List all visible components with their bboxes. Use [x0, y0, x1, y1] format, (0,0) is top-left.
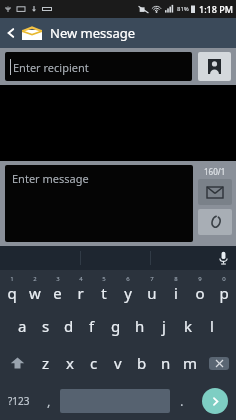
staticText: 0 [222, 275, 226, 283]
button[interactable]: 7 [140, 270, 164, 307]
staticText: y [124, 283, 132, 303]
staticText: u [147, 283, 157, 303]
staticText: e [53, 283, 62, 303]
button[interactable]: s [34, 307, 57, 344]
staticText: 9 [198, 275, 202, 283]
staticText: h [135, 316, 145, 336]
staticText: 160/1 [204, 166, 226, 177]
button[interactable]: 8 [164, 270, 188, 307]
button[interactable]: 1 [0, 270, 23, 307]
staticText: New message [50, 24, 136, 42]
button[interactable]: Shift [0, 344, 34, 382]
staticText: k [184, 316, 193, 336]
staticText: 4 [79, 275, 83, 283]
staticText: 8 [174, 275, 178, 283]
staticText: f [89, 316, 95, 336]
staticText: c [90, 353, 98, 373]
button[interactable]: Delete [202, 344, 236, 382]
staticText: n [161, 353, 171, 373]
button[interactable]: k [176, 307, 200, 344]
button[interactable]: 4 [69, 270, 92, 307]
button[interactable]: f [80, 307, 104, 344]
button[interactable]: m [178, 344, 202, 382]
button[interactable]: ?123 [0, 382, 37, 420]
staticText: a [18, 316, 27, 336]
button[interactable]: h [128, 307, 152, 344]
button[interactable]: 2 [23, 270, 46, 307]
button[interactable]: v [106, 344, 130, 382]
staticText: i [174, 283, 178, 303]
staticText: q [7, 283, 17, 303]
staticText: 5 [102, 275, 106, 283]
staticText: j [162, 316, 166, 336]
button[interactable]: Enter message [5, 165, 193, 242]
staticText: 7 [150, 275, 154, 283]
staticText: d [64, 316, 74, 336]
button[interactable]: a [11, 307, 34, 344]
button[interactable]: 0 [212, 270, 236, 307]
staticText: b [137, 353, 147, 373]
button[interactable]: Convert to multimedia message [198, 179, 232, 205]
button[interactable]: Comma [37, 382, 60, 420]
staticText: x [66, 353, 74, 373]
button[interactable]: Voice input [210, 246, 236, 270]
staticText: m [183, 353, 198, 373]
staticText: 1:18 PM [199, 3, 233, 15]
staticText: w [29, 283, 41, 303]
staticText: Enter recipient [13, 60, 89, 75]
button[interactable]: j [152, 307, 176, 344]
staticText: Enter message [12, 171, 89, 186]
button[interactable]: Send [193, 382, 236, 420]
button[interactable]: 6 [116, 270, 140, 307]
button[interactable]: d [57, 307, 80, 344]
button[interactable]: n [154, 344, 178, 382]
staticText: g [111, 316, 121, 336]
button[interactable]: 9 [188, 270, 212, 307]
staticText: v [114, 353, 122, 373]
staticText: p [219, 283, 229, 303]
staticText: 81% [177, 5, 189, 13]
button[interactable]: Attach [198, 209, 232, 235]
staticText: z [42, 353, 50, 373]
staticText: 2 [33, 275, 37, 283]
button[interactable]: 3 [46, 270, 69, 307]
staticText: 6 [126, 275, 130, 283]
button[interactable]: Add recipient from contacts [198, 52, 231, 81]
staticText: . [180, 392, 184, 410]
staticText: ?123 [8, 394, 30, 408]
staticText: t [101, 283, 107, 303]
button[interactable]: g [104, 307, 128, 344]
staticText: 3 [56, 275, 60, 283]
staticText: l [210, 316, 214, 336]
button[interactable]: 5 [92, 270, 116, 307]
button[interactable]: l [200, 307, 224, 344]
button[interactable]: z [34, 344, 58, 382]
staticText: r [77, 283, 84, 303]
staticText: , [47, 392, 51, 410]
staticText: s [42, 316, 50, 336]
button[interactable]: Back [0, 18, 22, 48]
button[interactable]: Period [170, 382, 193, 420]
button[interactable]: Enter recipient [5, 52, 192, 81]
button[interactable]: x [58, 344, 82, 382]
staticText: 1 [10, 275, 14, 283]
button[interactable]: b [130, 344, 154, 382]
staticText: o [195, 283, 205, 303]
button[interactable]: c [82, 344, 106, 382]
